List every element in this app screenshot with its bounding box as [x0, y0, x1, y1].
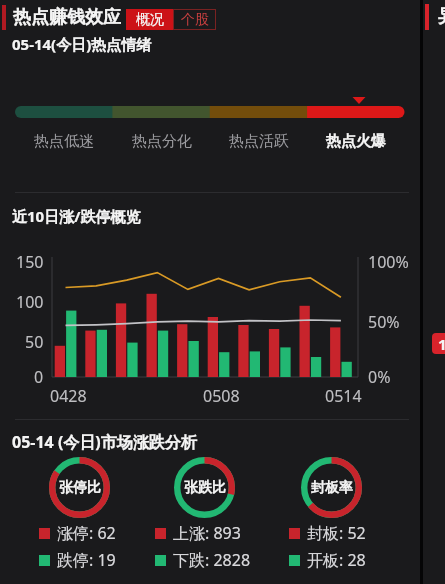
staticText: 开板: 28	[307, 549, 366, 571]
staticText: 封板率	[311, 479, 353, 497]
button[interactable]: Notification badge	[432, 333, 445, 354]
staticText: 近10日涨/跌停概览	[12, 206, 141, 226]
staticText: 异动	[438, 5, 445, 28]
staticText: 1	[438, 334, 445, 354]
staticText: 下跌: 2828	[173, 549, 251, 571]
button[interactable]: 下跌: 2828	[155, 549, 251, 571]
button[interactable]: 封板: 52	[289, 522, 366, 544]
button[interactable]: 开板: 28	[289, 549, 366, 571]
button[interactable]: 张停比	[49, 457, 110, 518]
staticText: 涨停: 62	[57, 522, 116, 544]
staticText: 50	[25, 331, 44, 353]
staticText: 100%	[368, 251, 409, 273]
button[interactable]: 涨停: 62	[39, 522, 116, 544]
staticText: 05-14 (今日)市场涨跌分析	[12, 431, 197, 453]
button[interactable]: 张跌比	[174, 457, 235, 518]
staticText: 张跌比	[184, 479, 226, 497]
staticText: 个股	[181, 11, 209, 29]
button[interactable]: 上涨: 893	[155, 522, 241, 544]
staticText: 跌停: 19	[57, 549, 116, 571]
button[interactable]: 热点火爆	[307, 130, 404, 152]
button[interactable]: 跌停: 19	[39, 549, 116, 571]
staticText: 0428	[50, 385, 87, 407]
staticText: 上涨: 893	[173, 522, 241, 544]
staticText: 封板: 52	[307, 522, 366, 544]
staticText: 0514	[325, 385, 362, 407]
button[interactable]: 热点分化	[113, 130, 210, 152]
staticText: 张停比	[59, 479, 101, 497]
button[interactable]: 个股	[173, 9, 216, 30]
button[interactable]: 热点低迷	[15, 130, 113, 152]
staticText: 50%	[368, 311, 400, 333]
staticText: 0508	[203, 385, 240, 407]
button[interactable]: 封板率	[301, 457, 362, 518]
staticText: 05-14(今日)热点情绪	[12, 34, 152, 54]
staticText: 100	[16, 291, 44, 313]
staticText: 概况	[136, 11, 164, 29]
staticText: 热点低迷	[34, 132, 94, 151]
staticText: 热点赚钱效应	[13, 6, 121, 29]
staticText: 150	[16, 251, 44, 273]
staticText: 热点火爆	[326, 132, 386, 151]
staticText: 热点分化	[132, 132, 192, 151]
staticText: 0%	[368, 366, 391, 388]
staticText: 热点活跃	[229, 132, 289, 151]
staticText: 0	[34, 366, 44, 388]
button[interactable]: 热点活跃	[210, 130, 307, 152]
button[interactable]: 概况	[126, 9, 173, 30]
